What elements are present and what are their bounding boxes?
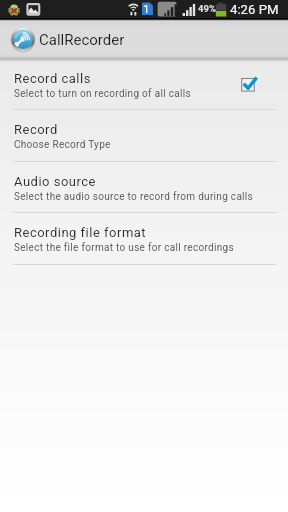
button[interactable]: Recording file format: [0, 213, 288, 265]
staticText: Select to turn on recording of all calls: [14, 88, 191, 100]
staticText: 4:26 PM: [230, 2, 279, 17]
staticText: Recording file format: [14, 225, 147, 240]
staticText: 49%: [198, 3, 216, 14]
staticText: Record calls: [14, 71, 91, 86]
staticText: Select the audio source to record from d…: [14, 191, 254, 203]
staticText: Select the file format to use for call r…: [14, 242, 234, 254]
staticText: Record: [14, 122, 58, 137]
button[interactable]: Record calls: [0, 59, 288, 111]
button[interactable]: Audio source: [0, 162, 288, 214]
button[interactable]: Record: [0, 110, 288, 162]
button[interactable]: Record calls checkbox: [238, 73, 262, 97]
staticText: CallRecorder: [39, 31, 125, 49]
staticText: Audio source: [14, 174, 96, 189]
staticText: Choose Record Type: [14, 139, 111, 151]
staticText: 1: [143, 2, 150, 15]
